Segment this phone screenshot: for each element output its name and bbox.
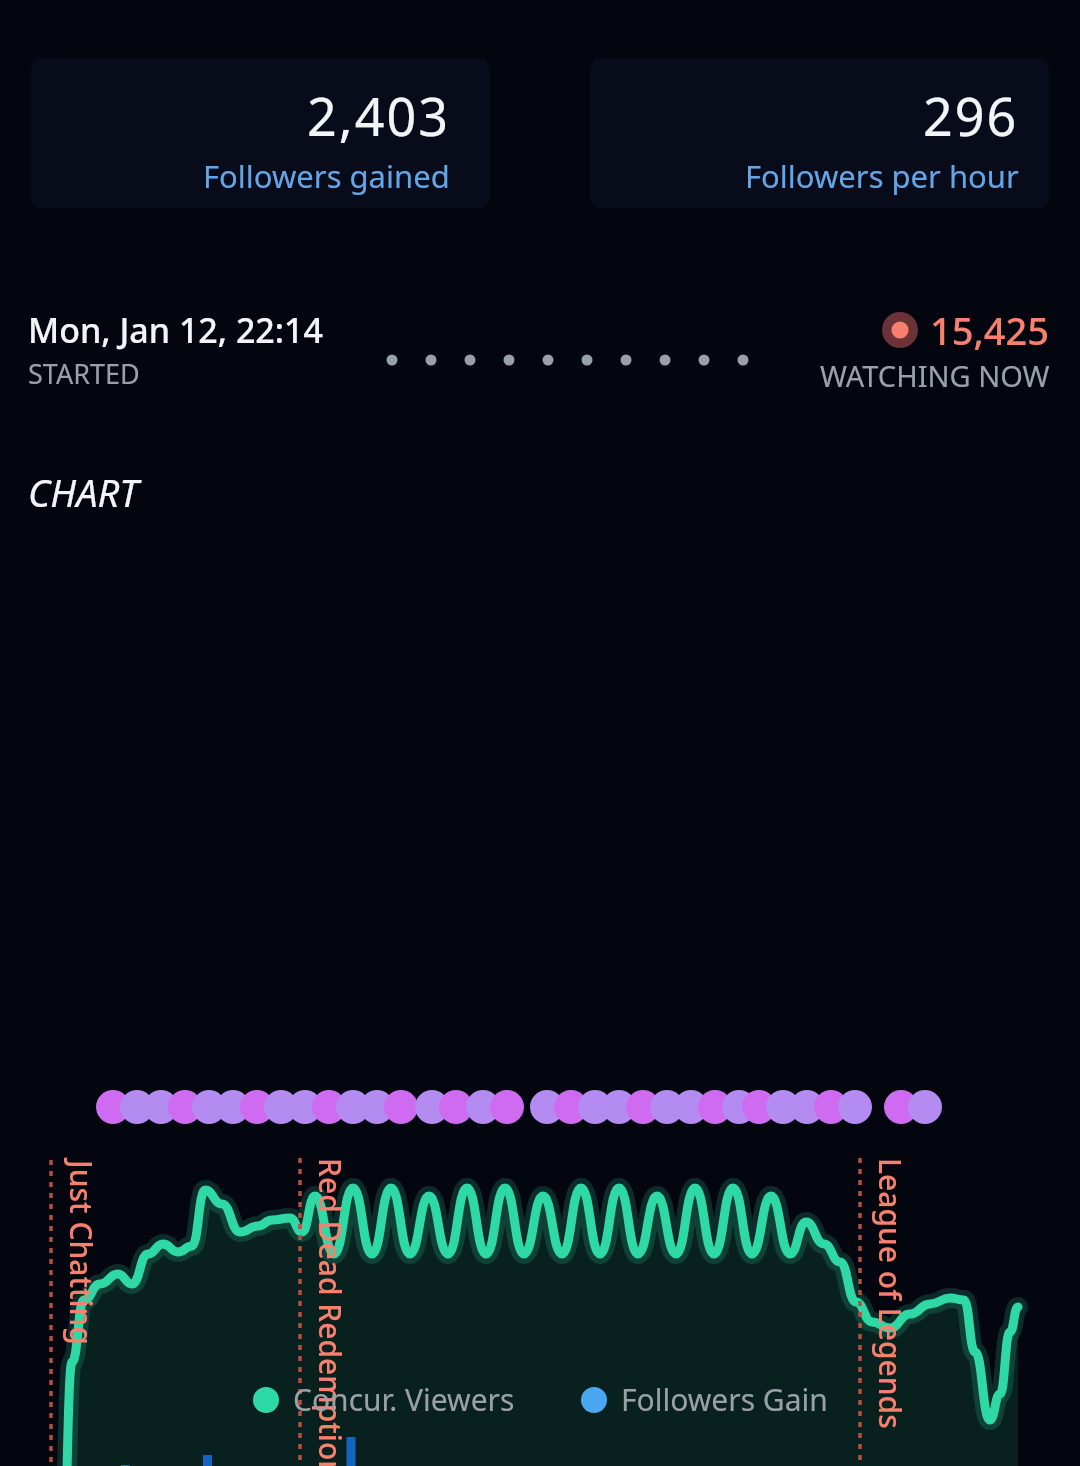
staticText: WATCHING NOW — [820, 356, 1050, 394]
staticText: Followers gained — [203, 155, 450, 197]
button[interactable]: Followers Gain — [581, 1379, 828, 1420]
staticText: 296 — [923, 80, 1019, 151]
button[interactable]: 296 — [590, 58, 1049, 208]
button[interactable]: 2,403 — [31, 58, 490, 208]
staticText: Followers per hour — [745, 155, 1019, 197]
staticText: STARTED — [28, 355, 140, 392]
staticText: Mon, Jan 12, 22:14 — [28, 307, 323, 353]
staticText: 2,403 — [307, 80, 450, 151]
staticText: 15,425 — [930, 304, 1050, 356]
staticText: CHART — [28, 466, 139, 518]
staticText: Concur. Viewers — [293, 1379, 515, 1420]
staticText: Followers Gain — [621, 1379, 828, 1420]
other: Stream chart — [0, 532, 1080, 1379]
button[interactable]: Concur. Viewers — [253, 1379, 515, 1420]
